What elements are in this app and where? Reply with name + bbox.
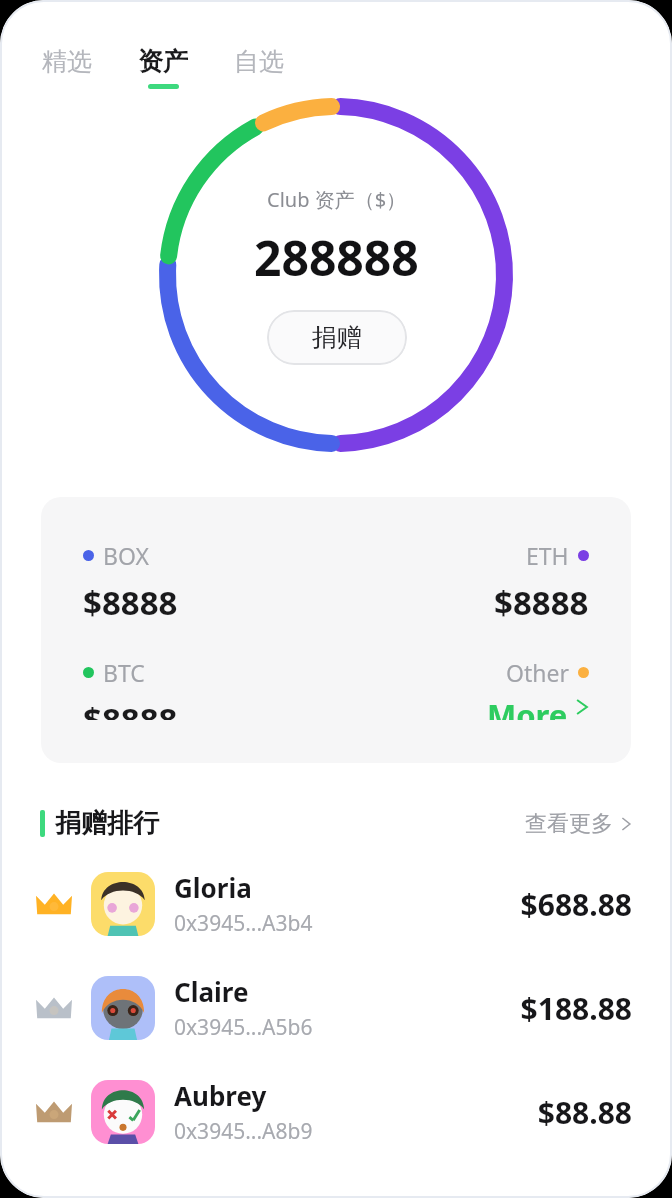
button[interactable]: More — [487, 694, 589, 720]
button[interactable]: 精选 — [40, 46, 94, 77]
staticText: Other — [506, 657, 569, 688]
other: Rank 2 crown — [34, 992, 74, 1024]
other: Rank 3 crown — [34, 1096, 74, 1128]
staticText: 288888 — [254, 225, 419, 290]
button[interactable]: 查看更多 — [525, 810, 632, 838]
staticText: 自选 — [234, 46, 284, 77]
button[interactable]: Rank 3 crown — [0, 1060, 672, 1164]
staticText: 捐赠 — [312, 322, 362, 353]
staticText: Club 资产（$） — [267, 186, 407, 213]
button[interactable]: 自选 — [232, 46, 286, 77]
staticText: 0x3945...A8b9 — [174, 1117, 313, 1146]
staticText: Gloria — [174, 870, 252, 905]
staticText: $8888 — [83, 697, 178, 720]
button[interactable]: 捐赠 — [267, 310, 407, 365]
staticText: BTC — [103, 657, 145, 688]
staticText: 资产 — [138, 46, 188, 77]
staticText: Claire — [174, 974, 249, 1009]
staticText: More — [487, 694, 568, 720]
staticText: 0x3945...A3b4 — [174, 909, 313, 938]
other: Rank 1 crown — [34, 888, 74, 920]
staticText: $688.88 — [520, 884, 632, 925]
staticText: ETH — [526, 540, 569, 571]
staticText: 查看更多 — [525, 810, 613, 838]
staticText: 捐赠排行 — [55, 807, 159, 840]
staticText: 精选 — [42, 46, 92, 77]
staticText: $8888 — [494, 580, 589, 625]
staticText: $8888 — [83, 580, 178, 625]
staticText: 0x3945...A5b6 — [174, 1013, 313, 1042]
button[interactable]: 资产 — [136, 46, 190, 89]
button[interactable]: Rank 2 crown — [0, 956, 672, 1060]
staticText: $188.88 — [520, 988, 632, 1029]
staticText: Aubrey — [174, 1078, 267, 1113]
button[interactable]: Rank 1 crown — [0, 852, 672, 956]
staticText: $88.88 — [537, 1092, 632, 1133]
staticText: BOX — [103, 540, 149, 571]
